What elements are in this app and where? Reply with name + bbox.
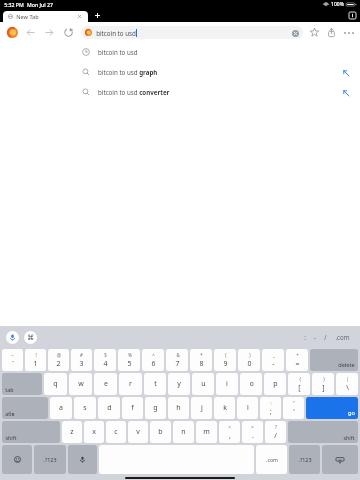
staticText: / [324, 333, 327, 341]
button[interactable]: Fill in query [341, 88, 350, 97]
button[interactable]: Forward [43, 26, 56, 39]
button[interactable]: Switch keyboard [24, 331, 37, 344]
button[interactable]: c [106, 421, 126, 443]
button[interactable]: x [84, 421, 104, 443]
button[interactable]: a [50, 397, 72, 419]
button[interactable]: More options [342, 26, 355, 39]
button[interactable]: ! [25, 349, 46, 371]
button[interactable]: bitcoin to usd converter [0, 82, 360, 102]
button[interactable]: v [128, 421, 148, 443]
button[interactable]: .com [335, 333, 350, 341]
button[interactable]: $ [94, 349, 116, 371]
button[interactable]: Emoji [2, 445, 32, 474]
button[interactable]: bitcoin to usd graph [0, 62, 360, 82]
button[interactable]: % [118, 349, 140, 371]
button[interactable]: < [219, 421, 240, 443]
button[interactable]: } [312, 373, 334, 395]
button[interactable]: Share [325, 26, 338, 39]
button[interactable]: Back [24, 26, 37, 39]
button[interactable]: t [144, 373, 166, 395]
button[interactable]: k [214, 397, 235, 419]
button[interactable]: & [166, 349, 188, 371]
staticText: bitcoin to usd converter [98, 88, 170, 96]
staticText: o [249, 379, 254, 389]
button[interactable]: : [260, 397, 281, 419]
button[interactable]: u [192, 373, 214, 395]
button[interactable]: y [168, 373, 190, 395]
button[interactable]: m [196, 421, 217, 443]
button[interactable]: " [283, 397, 304, 419]
button[interactable]: Hide keyboard [322, 445, 358, 474]
button[interactable]: * [190, 349, 212, 371]
button[interactable]: Voice input [6, 331, 19, 344]
button[interactable]: - [314, 333, 316, 341]
button[interactable]: ) [238, 349, 260, 371]
button[interactable]: o [240, 373, 262, 395]
button[interactable]: n [173, 421, 194, 443]
button[interactable]: bitcoin to usd [81, 26, 303, 39]
button[interactable]: delete [310, 349, 358, 371]
button[interactable]: b [150, 421, 171, 443]
button[interactable]: r [119, 373, 142, 395]
button[interactable]: : [304, 333, 306, 341]
button[interactable]: .com [256, 445, 287, 474]
button[interactable]: Bookmark [308, 26, 321, 39]
button[interactable]: Tabs [349, 12, 356, 19]
button[interactable]: New tab [91, 9, 104, 22]
button[interactable]: Clear [291, 29, 299, 37]
button[interactable]: Fill in query [341, 68, 350, 77]
staticText: a [59, 403, 63, 413]
button[interactable]: Close tab [76, 13, 83, 20]
button[interactable]: @ [48, 349, 69, 371]
staticText: = [295, 359, 300, 369]
button[interactable]: p [264, 373, 286, 395]
button[interactable]: tab [2, 373, 42, 395]
button[interactable]: абв [2, 397, 48, 419]
button[interactable]: Reload [62, 26, 75, 39]
button[interactable]: | [336, 373, 358, 395]
button[interactable]: / [324, 333, 327, 341]
button[interactable]: shift [288, 421, 358, 443]
button[interactable]: ~ [2, 349, 23, 371]
button[interactable]: > [242, 421, 263, 443]
button[interactable]: Firefox [5, 25, 19, 39]
button[interactable]: g [145, 397, 166, 419]
button[interactable]: + [286, 349, 308, 371]
button[interactable]: Voice [68, 445, 97, 474]
button[interactable]: # [71, 349, 92, 371]
button[interactable]: ^ [142, 349, 164, 371]
button[interactable]: e [94, 373, 117, 395]
button[interactable]: { [288, 373, 310, 395]
button[interactable]: z [62, 421, 82, 443]
staticText: .com [266, 456, 278, 463]
button[interactable]: shift [2, 421, 60, 443]
staticText: ( [225, 352, 227, 358]
staticText: b [158, 427, 163, 437]
button[interactable]: h [168, 397, 189, 419]
button[interactable]: ( [214, 349, 236, 371]
button[interactable]: w [69, 373, 92, 395]
button[interactable]: go [306, 397, 358, 419]
button[interactable]: .?123 [289, 445, 320, 474]
button[interactable]: s [74, 397, 96, 419]
staticText: x [92, 427, 96, 437]
staticText: < [228, 424, 231, 430]
button[interactable]: bitcoin to usd [0, 42, 360, 62]
staticText: > [251, 424, 254, 430]
staticText: s [83, 403, 87, 413]
staticText: Mon Jul 27 [27, 1, 53, 8]
button[interactable]: f [122, 397, 143, 419]
button[interactable]: ? [265, 421, 286, 443]
staticText: [ [298, 383, 301, 393]
button[interactable]: .?123 [34, 445, 66, 474]
staticText: t [154, 379, 157, 389]
button[interactable]: l [237, 397, 258, 419]
button[interactable]: j [191, 397, 212, 419]
button[interactable]: i [216, 373, 238, 395]
button[interactable]: New Tab [3, 11, 88, 22]
staticText: y [177, 379, 181, 389]
button[interactable]: d [98, 397, 120, 419]
button[interactable]: q [44, 373, 67, 395]
button[interactable]: _ [262, 349, 284, 371]
